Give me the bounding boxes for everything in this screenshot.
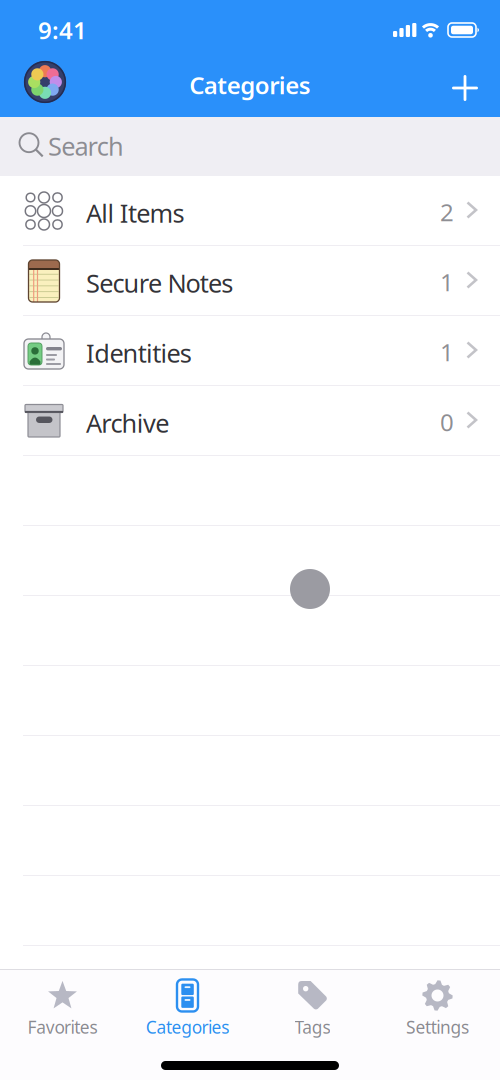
staticText: 1 [440,336,454,368]
staticText: 1 [440,266,454,298]
button[interactable]: Identities [0,316,500,386]
staticText: Archive [86,406,169,440]
staticText: Favorites [28,1015,97,1038]
staticText: Identities [86,336,192,370]
button[interactable]: Secure Notes [0,246,500,316]
button[interactable]: Add item [439,64,491,112]
staticText: Settings [406,1015,469,1038]
staticText: 9:41 [38,14,87,46]
button[interactable]: Account [16,58,74,106]
staticText: Categories [189,69,311,101]
button[interactable]: Categories [125,976,250,1042]
button[interactable]: Archive [0,386,500,456]
staticText: Secure Notes [86,266,233,300]
staticText: Categories [146,1015,229,1038]
button[interactable]: Search [0,117,500,176]
button[interactable]: All Items [0,176,500,246]
button[interactable]: Tags [250,976,375,1042]
button[interactable]: Favorites [0,976,125,1042]
button[interactable]: Settings [375,976,500,1042]
staticText: 2 [440,196,454,228]
staticText: Search [48,129,124,163]
staticText: Tags [295,1015,330,1038]
staticText: All Items [86,196,185,230]
staticText: 0 [440,406,454,438]
